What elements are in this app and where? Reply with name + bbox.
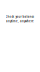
staticText: anytime, anywhere: [6, 19, 34, 23]
staticText: Check your balance: [5, 15, 34, 18]
